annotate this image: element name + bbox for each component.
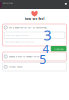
staticText: Your answers always stay anonymous.: [4, 41, 35, 43]
staticText: 4: [43, 41, 50, 56]
button[interactable]: Almost there!: [2, 62, 66, 71]
staticText: Ask a question (or tell us something): [9, 26, 47, 29]
staticText: Choose a way to connect with us: [9, 55, 42, 58]
button[interactable]: Ask a question (or tell us something): [2, 24, 66, 31]
button[interactable]: Choose a way to connect with us: [2, 52, 66, 61]
staticText: 5: [39, 51, 46, 67]
staticText: 3: [43, 25, 51, 45]
staticText: Continue: [54, 47, 63, 50]
button[interactable]: Continue: [51, 46, 66, 51]
staticText: how we feel: [24, 17, 44, 21]
staticText: Type your question here…: [5, 34, 30, 37]
staticText: howwefeel: [2, 1, 13, 4]
staticText: Almost there!: [9, 65, 23, 68]
